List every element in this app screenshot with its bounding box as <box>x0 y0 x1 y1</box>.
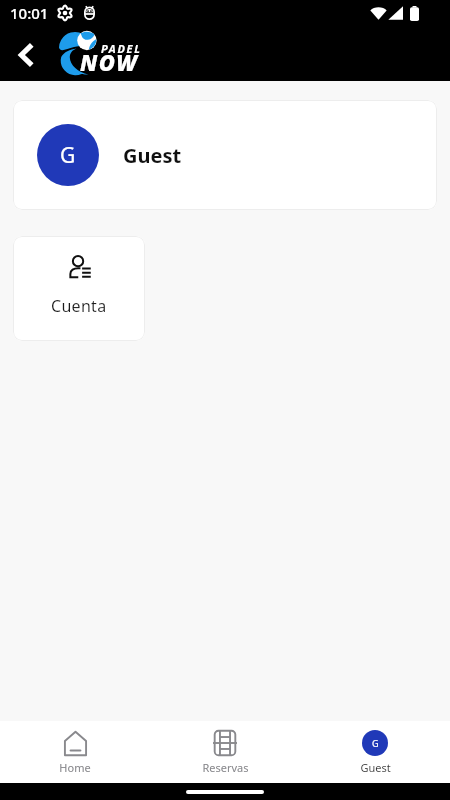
staticText: G <box>372 737 379 749</box>
staticText: Guest <box>360 760 391 775</box>
button[interactable]: Back <box>0 29 52 81</box>
staticText: Cuenta <box>51 295 107 317</box>
staticText: NOW <box>80 47 139 77</box>
button[interactable]: G <box>13 100 437 210</box>
staticText: Guest <box>123 142 182 169</box>
staticText: G <box>60 141 76 170</box>
staticText: Reservas <box>202 760 249 775</box>
button[interactable]: G <box>300 721 450 783</box>
staticText: PADEL <box>101 41 142 56</box>
button[interactable]: Reservas <box>150 721 300 783</box>
button[interactable]: Home <box>0 721 150 783</box>
button[interactable]: Cuenta <box>13 236 145 341</box>
staticText: Home <box>59 760 91 775</box>
staticText: 10:01 <box>10 3 49 23</box>
